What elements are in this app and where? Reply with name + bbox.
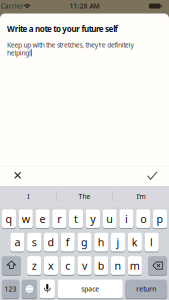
staticText: t (74, 212, 78, 226)
staticText: Write a note to your future self (7, 24, 118, 34)
staticText: u (106, 212, 113, 226)
staticText: x (48, 258, 54, 273)
staticText: i (125, 212, 128, 226)
staticText: v (82, 258, 87, 273)
staticText: f (66, 235, 70, 249)
staticText: o (140, 212, 146, 226)
staticText: a (14, 235, 20, 249)
staticText: s (32, 235, 37, 249)
staticText: m (130, 258, 140, 273)
staticText: 11:28 AM (69, 2, 99, 10)
staticText: I'm (136, 192, 145, 201)
staticText: y (90, 212, 95, 226)
staticText: d (47, 235, 54, 249)
staticText: j (117, 235, 120, 249)
staticText: q (5, 212, 12, 226)
staticText: w (22, 212, 30, 226)
staticText: b (98, 258, 105, 273)
staticText: I (27, 192, 29, 201)
staticText: helping! (7, 49, 31, 57)
staticText: Carrier (1, 2, 24, 10)
staticText: r (57, 212, 61, 226)
staticText: return (136, 284, 156, 293)
staticText: The (78, 192, 90, 201)
staticText: z (32, 258, 37, 273)
staticText: p (156, 212, 163, 226)
staticText: e (39, 212, 45, 226)
staticText: Keep up with the stretches, they're defi… (7, 41, 133, 49)
staticText: space (81, 284, 99, 293)
staticText: n (115, 258, 122, 273)
staticText: l (150, 235, 153, 249)
staticText: 123 (5, 284, 17, 293)
staticText: k (132, 235, 138, 249)
staticText: c (65, 258, 70, 273)
staticText: h (98, 235, 105, 249)
staticText: g (81, 235, 88, 249)
